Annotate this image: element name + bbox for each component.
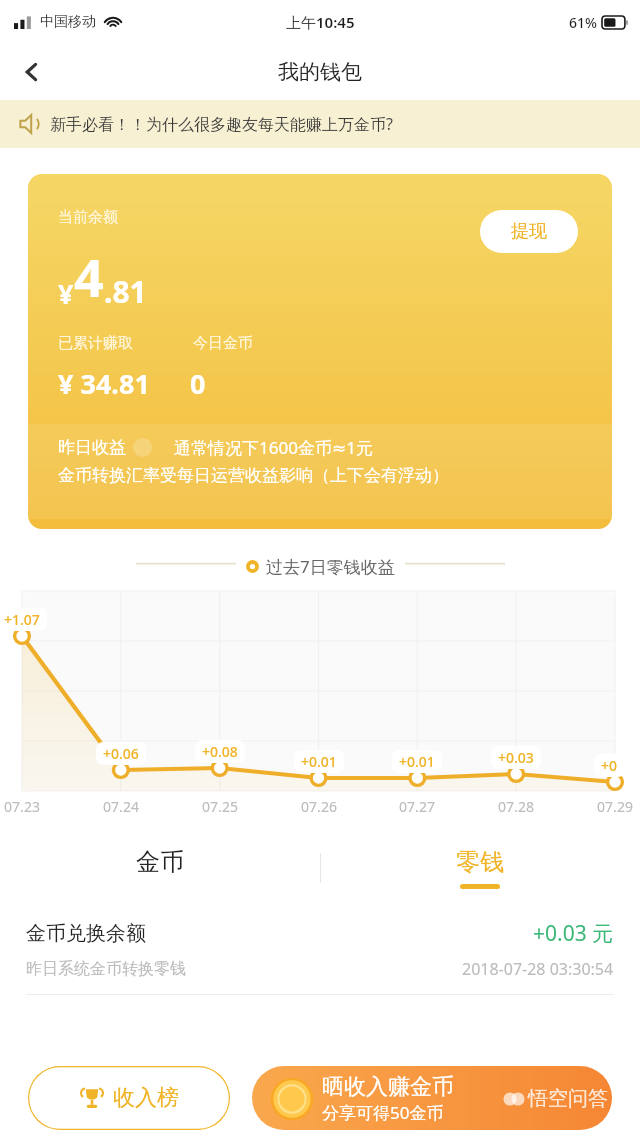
staticText: +0.01	[399, 752, 435, 771]
staticText: 上午10:45	[286, 12, 355, 32]
staticText: +0.01	[301, 752, 337, 771]
staticText: 07.25	[190, 797, 250, 816]
staticText: 提现	[511, 220, 547, 243]
button[interactable]: 提现	[480, 210, 578, 253]
button[interactable]: 新手必看！！为什么很多趣友每天能赚上万金币?	[0, 100, 640, 148]
staticText: 金币兑换余额	[26, 921, 146, 946]
button[interactable]: 金币	[0, 839, 320, 909]
staticText: ¥ 34.81	[58, 365, 150, 402]
staticText: 零钱	[456, 847, 504, 877]
staticText: 收入榜	[113, 1084, 179, 1112]
staticText: 金币转换汇率受每日运营收益影响（上下会有浮动）	[58, 465, 449, 486]
staticText: 悟空问答	[528, 1086, 608, 1111]
button[interactable]: Back	[8, 48, 56, 96]
button[interactable]: 金币兑换余额	[0, 909, 640, 995]
staticText: 我的钱包	[278, 59, 362, 85]
staticText: .81	[104, 271, 147, 312]
staticText: +0	[601, 756, 618, 775]
staticText: 过去7日零钱收益	[266, 555, 395, 578]
staticText: 分享可得50金币	[322, 1101, 444, 1124]
staticText: 当前余额	[58, 208, 118, 227]
staticText: 2018-07-28 03:30:54	[462, 958, 614, 980]
staticText: 0	[190, 365, 206, 402]
staticText: +1.07	[4, 610, 40, 629]
staticText: +0.08	[202, 742, 238, 761]
staticText: 07.26	[289, 797, 349, 816]
staticText: 07.24	[91, 797, 151, 816]
staticText: 通常情况下1600金币≈1元	[174, 436, 373, 459]
staticText: 晒收入赚金币	[322, 1073, 454, 1101]
button[interactable]: 晒收入赚金币	[252, 1066, 612, 1130]
staticText: 昨日收益	[58, 437, 126, 458]
staticText: 昨日系统金币转换零钱	[26, 959, 186, 979]
staticText: +0.03 元	[533, 919, 614, 948]
staticText: 今日金币	[193, 334, 253, 353]
staticText: 07.27	[387, 797, 447, 816]
button[interactable]: 收入榜	[28, 1066, 230, 1130]
staticText: 61%	[569, 13, 597, 32]
staticText: 中国移动	[40, 13, 96, 31]
staticText: +0.03	[498, 748, 534, 767]
staticText: 新手必看！！为什么很多趣友每天能赚上万金币?	[50, 113, 393, 135]
staticText: 金币	[136, 847, 184, 877]
staticText: +0.06	[103, 744, 139, 763]
staticText: 4	[74, 241, 104, 312]
staticText: 07.29	[585, 797, 640, 816]
staticText: 07.28	[486, 797, 546, 816]
button[interactable]: 当前余额	[28, 174, 612, 529]
button[interactable]: 零钱	[320, 839, 640, 909]
button[interactable]: Help	[133, 438, 152, 457]
staticText: 07.23	[0, 797, 52, 816]
staticText: 已累计赚取	[58, 334, 133, 353]
staticText: ¥	[58, 275, 74, 312]
